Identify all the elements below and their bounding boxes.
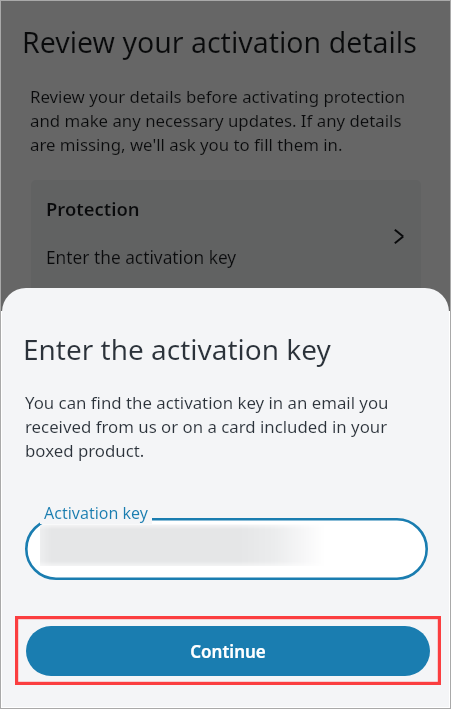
staticText: Enter the activation key (23, 330, 331, 368)
staticText: Continue (190, 640, 266, 663)
staticText: Activation key (44, 502, 148, 524)
staticText: Protection (46, 196, 140, 221)
other: Open protection details (394, 229, 404, 244)
button[interactable] (25, 518, 428, 580)
button[interactable]: Continue (26, 626, 430, 676)
staticText: Review your activation details (22, 23, 417, 62)
staticText: You can find the activation key in an em… (25, 391, 393, 462)
staticText: Review your details before activating pr… (30, 85, 420, 156)
staticText: Enter the activation key (46, 246, 237, 270)
button[interactable]: Protection (31, 180, 421, 300)
